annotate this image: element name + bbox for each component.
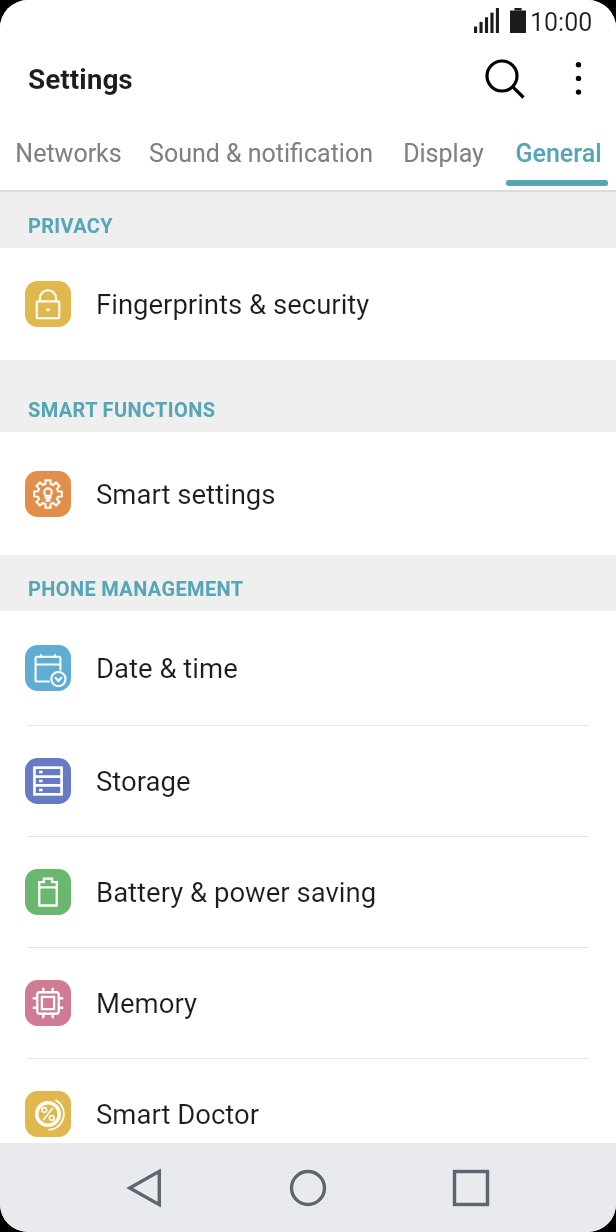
button[interactable]: Search [468, 45, 532, 109]
button[interactable]: Battery & power saving [0, 837, 616, 947]
button[interactable]: Smart Doctor [0, 1059, 616, 1143]
button[interactable]: Smart settings [0, 432, 616, 555]
staticText: Storage [96, 765, 191, 797]
button[interactable]: Sound & notification [136, 124, 386, 190]
button[interactable]: Recent apps [431, 1143, 511, 1232]
staticText: Smart settings [96, 478, 276, 510]
staticText: Date & time [96, 652, 238, 684]
staticText: General [515, 139, 602, 168]
staticText: PRIVACY [28, 214, 114, 237]
staticText: Fingerprints & security [96, 288, 370, 320]
staticText: Settings [28, 63, 133, 96]
button[interactable]: Home [268, 1143, 348, 1232]
button[interactable]: General [500, 124, 616, 190]
button[interactable]: More options [546, 45, 610, 109]
button[interactable]: Display [386, 124, 500, 190]
staticText: Networks [15, 139, 122, 168]
button[interactable]: Networks [0, 124, 136, 190]
button[interactable]: Date & time [0, 611, 616, 725]
button[interactable]: Storage [0, 726, 616, 836]
staticText: PHONE MANAGEMENT [28, 577, 244, 600]
button[interactable]: Back [105, 1143, 185, 1232]
staticText: Battery & power saving [96, 876, 377, 908]
button[interactable]: Memory [0, 948, 616, 1058]
button[interactable]: Fingerprints & security [0, 248, 616, 360]
staticText: 10:00 [530, 8, 593, 33]
staticText: Display [403, 139, 484, 168]
staticText: Memory [96, 987, 197, 1019]
staticText: Smart Doctor [96, 1098, 260, 1130]
staticText: SMART FUNCTIONS [28, 398, 216, 421]
staticText: Sound & notification [149, 139, 373, 168]
